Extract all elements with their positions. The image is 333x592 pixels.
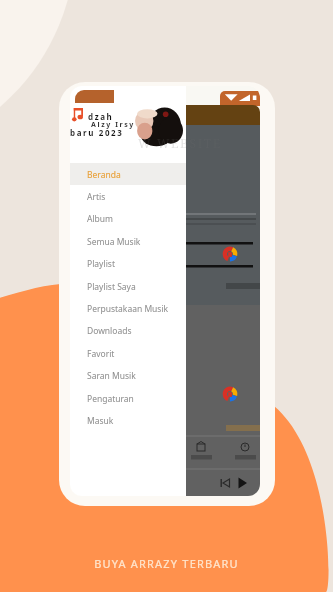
button[interactable]: Album xyxy=(70,207,186,230)
staticText: Favorit xyxy=(87,348,115,360)
staticText: Album xyxy=(87,213,114,225)
staticText: baru 2023 xyxy=(70,127,124,138)
staticText: Beranda xyxy=(87,169,121,181)
button[interactable]: Downloads xyxy=(70,319,186,342)
button[interactable]: Perpustakaan Musik xyxy=(70,297,186,320)
staticText: Playlist Saya xyxy=(87,281,136,293)
staticText: Downloads xyxy=(87,325,132,337)
button[interactable]: Playlist xyxy=(70,252,186,275)
button[interactable]: Favorit xyxy=(70,342,186,365)
staticText: dzah xyxy=(88,111,114,122)
staticText: Saran Musik xyxy=(87,370,136,382)
staticText: BUYA ARRAZY TERBARU xyxy=(0,556,333,571)
staticText: Artis xyxy=(87,191,106,203)
button[interactable]: Masuk xyxy=(70,409,186,432)
staticText: W WEBSITE xyxy=(138,135,222,151)
staticText: Perpustakaan Musik xyxy=(87,303,169,315)
button[interactable]: Semua Musik xyxy=(70,230,186,253)
button[interactable]: Playlist Saya xyxy=(70,275,186,298)
staticText: Playlist xyxy=(87,258,115,270)
staticText: Pengaturan xyxy=(87,393,134,405)
button[interactable]: Pengaturan xyxy=(70,387,186,410)
button[interactable]: Beranda xyxy=(70,163,186,186)
staticText: Alzy Irsy xyxy=(91,120,135,130)
staticText: Masuk xyxy=(87,415,114,427)
button[interactable]: Saran Musik xyxy=(70,364,186,387)
staticText: Semua Musik xyxy=(87,236,141,248)
button[interactable]: Artis xyxy=(70,185,186,208)
